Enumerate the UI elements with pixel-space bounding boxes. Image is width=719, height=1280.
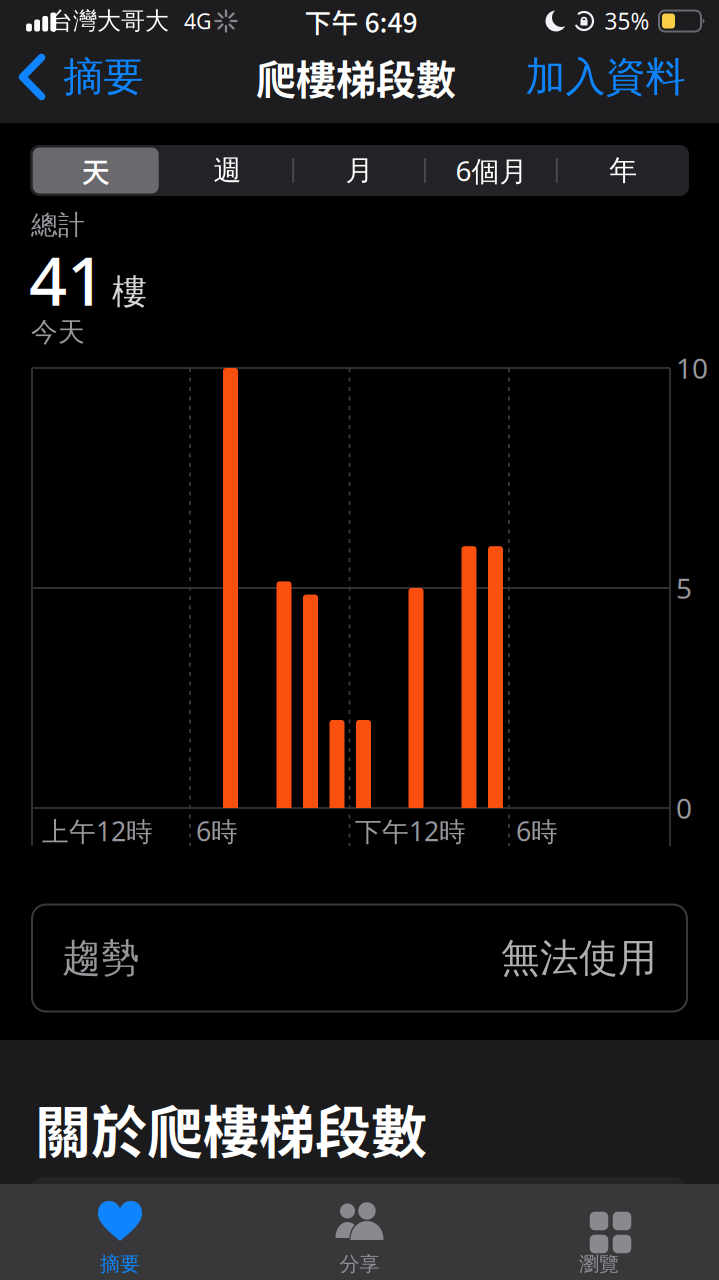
staticText: 台灣大哥大 — [49, 6, 169, 36]
staticText: 6時 — [196, 813, 238, 849]
staticText: 加入資料 — [525, 52, 685, 101]
staticText: 下午 6:49 — [304, 2, 417, 40]
staticText: 樓 — [112, 271, 147, 313]
staticText: 週 — [214, 153, 242, 188]
staticText: 無法使用 — [501, 934, 657, 982]
staticText: 年 — [609, 153, 637, 188]
staticText: 上午12時 — [42, 813, 153, 849]
staticText: 分享 — [339, 1252, 379, 1276]
staticText: 下午12時 — [355, 813, 466, 849]
staticText: 35% — [604, 6, 649, 36]
staticText: 41 — [29, 236, 105, 324]
button[interactable]: 返回摘要 — [18, 52, 143, 101]
button[interactable]: 瀏覽 — [509, 1184, 689, 1280]
staticText: 0 — [676, 789, 692, 827]
button[interactable]: 摘要 — [30, 1184, 210, 1280]
staticText: 4G — [184, 7, 212, 35]
staticText: 摘要 — [100, 1252, 140, 1276]
button[interactable]: 週 — [163, 145, 293, 195]
staticText: 趨勢 — [62, 934, 140, 982]
staticText: 10 — [676, 349, 708, 387]
button[interactable]: 加入資料 — [525, 52, 685, 101]
staticText: 今天 — [31, 316, 85, 348]
staticText: 天 — [82, 150, 110, 191]
staticText: 6個月 — [455, 152, 527, 189]
staticText: 關於爬樓梯段數 — [35, 1087, 427, 1169]
staticText: 月 — [345, 153, 373, 188]
staticText: 摘要 — [63, 52, 143, 101]
staticText: 爬樓梯段數 — [256, 48, 456, 106]
button[interactable]: 天 — [31, 145, 161, 195]
staticText: 瀏覽 — [579, 1252, 619, 1276]
button[interactable]: 年 — [558, 145, 688, 195]
staticText: 總計 — [31, 209, 85, 241]
button[interactable]: 6個月 — [426, 145, 556, 195]
button[interactable]: 分享 — [269, 1184, 449, 1280]
staticText: 6時 — [516, 813, 558, 849]
staticText: 5 — [676, 569, 692, 607]
button[interactable]: 月 — [294, 145, 424, 195]
